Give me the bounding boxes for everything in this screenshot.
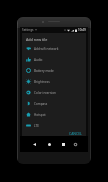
- button[interactable]: Back: [30, 140, 39, 149]
- button[interactable]: Add wifi network: [22, 43, 86, 54]
- staticText: 10:49: [78, 28, 86, 32]
- staticText: Battery mode: [34, 69, 54, 73]
- staticText: CANCEL: [69, 131, 82, 136]
- staticText: Brightness: [34, 80, 50, 84]
- button[interactable]: Brightness: [22, 76, 86, 87]
- button[interactable]: Compass: [22, 98, 86, 109]
- staticText: Compass: [34, 102, 48, 106]
- button[interactable]: Recents: [59, 140, 68, 149]
- button[interactable]: Home: [45, 140, 54, 149]
- button[interactable]: Audio: [22, 54, 86, 65]
- staticText: Add new tile: [26, 37, 48, 42]
- staticText: Audio: [34, 58, 43, 62]
- button[interactable]: LTE: [22, 120, 86, 131]
- staticText: LTE: [34, 124, 39, 128]
- button[interactable]: Rotate screen: [71, 140, 80, 149]
- staticText: Hotspot: [34, 113, 46, 117]
- staticText: Color inversion: [34, 91, 56, 95]
- button[interactable]: Hotspot: [22, 109, 86, 120]
- staticText: Add wifi network: [34, 47, 59, 51]
- button[interactable]: Battery mode: [22, 65, 86, 76]
- button[interactable]: CANCEL: [67, 129, 84, 138]
- button[interactable]: Color inversion: [22, 87, 86, 98]
- staticText: Settings: [22, 28, 34, 32]
